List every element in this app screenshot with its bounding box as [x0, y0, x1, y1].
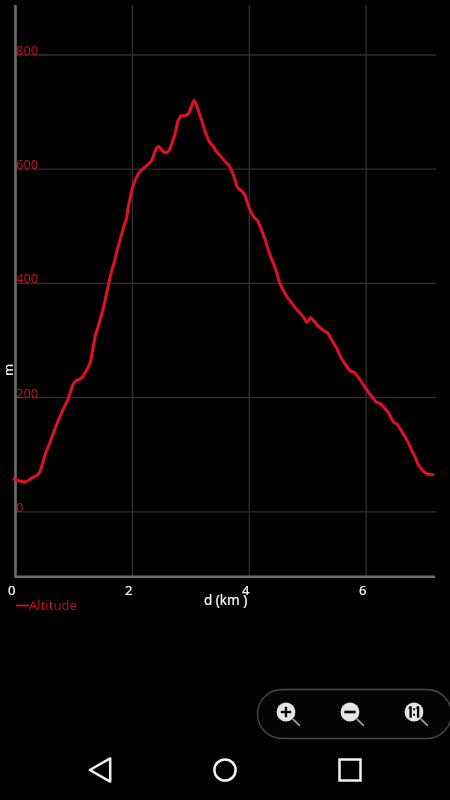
staticText: 0: [8, 581, 16, 599]
staticText: 4: [242, 581, 250, 599]
staticText: 200: [16, 384, 39, 402]
button[interactable]: Reset zoom to 1:1: [397, 695, 431, 729]
staticText: 6: [359, 581, 367, 599]
staticText: 800: [16, 41, 39, 59]
staticText: 600: [16, 155, 39, 173]
button[interactable]: Recent apps: [328, 748, 372, 792]
button[interactable]: Zoom out: [333, 695, 367, 729]
button[interactable]: Zoom in: [269, 695, 303, 729]
button[interactable]: Home: [203, 748, 247, 792]
staticText: 2: [125, 581, 133, 599]
staticText: d (km ): [204, 591, 248, 609]
staticText: m: [0, 363, 17, 376]
staticText: 0: [16, 498, 24, 516]
staticText: Altitude: [29, 596, 77, 614]
staticText: 400: [16, 269, 39, 287]
button[interactable]: Back: [78, 748, 122, 792]
